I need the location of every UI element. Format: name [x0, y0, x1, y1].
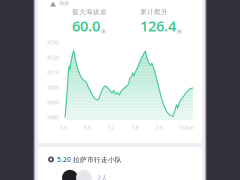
staticText: 60.0	[72, 16, 100, 36]
staticText: 2.4	[155, 124, 162, 131]
staticText: 1.8	[131, 124, 138, 131]
staticText: 0.6	[84, 124, 91, 131]
staticText: 4480	[47, 114, 59, 121]
staticText: 4490	[47, 99, 59, 106]
staticText: 2人	[97, 173, 108, 180]
staticText: 米	[177, 28, 182, 35]
staticText: 1.2	[108, 124, 115, 131]
staticText: 4500	[47, 84, 59, 91]
staticText: 3.0km	[179, 124, 194, 131]
staticText: 0.0	[60, 124, 67, 131]
staticText: 5.20 拉萨市行走小队	[57, 155, 122, 164]
button[interactable]: 5.20 拉萨市行走小队	[38, 147, 202, 180]
staticText: 最大海拔差	[72, 8, 107, 16]
staticText: 126.4	[140, 16, 176, 36]
staticText: 累计爬升	[140, 8, 168, 16]
staticText: 米	[101, 28, 106, 35]
staticText: 海拔	[59, 0, 69, 7]
staticText: 4510	[47, 69, 59, 76]
staticText: 4530	[47, 39, 59, 46]
staticText: 4520	[47, 54, 59, 61]
